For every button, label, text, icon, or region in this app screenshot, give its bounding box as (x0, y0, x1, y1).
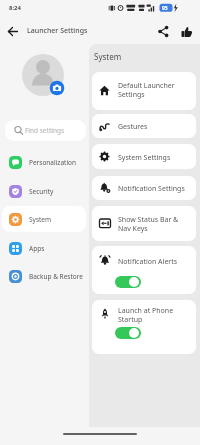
button[interactable] (156, 24, 171, 39)
staticText: Show Status Bar & Nav Keys (118, 215, 179, 233)
button[interactable]: Backup & Restore (4, 262, 86, 290)
staticText: Find settings (25, 126, 65, 135)
button[interactable]: System Settings (92, 144, 196, 169)
button[interactable]: Gestures (92, 114, 196, 138)
button[interactable]: Find settings (5, 120, 86, 141)
button[interactable]: Show Status Bar & Nav Keys (92, 206, 196, 241)
button[interactable]: Apps (4, 234, 86, 262)
staticText: Personalization (29, 158, 77, 167)
button[interactable] (4, 23, 21, 40)
button[interactable]: Personalization (4, 148, 86, 176)
staticText: System (94, 51, 122, 62)
staticText: Notification Alerts (118, 257, 178, 267)
button[interactable]: Default Launcher Settings (92, 72, 196, 110)
staticText: Default Launcher Settings (118, 81, 175, 99)
button[interactable] (179, 24, 194, 39)
staticText: Notification Settings (118, 184, 185, 194)
button[interactable] (115, 276, 141, 288)
button[interactable]: Notification Settings (92, 176, 196, 200)
button[interactable]: Launch at Phone Startup (92, 300, 196, 354)
button[interactable]: Notification Alerts (92, 246, 196, 294)
button[interactable] (115, 327, 141, 339)
staticText: 95 (162, 5, 168, 12)
button[interactable]: Security (4, 177, 86, 205)
button[interactable]: System (4, 205, 86, 233)
staticText: System (29, 215, 52, 224)
staticText: System Settings (118, 153, 171, 163)
staticText: Gestures (118, 122, 148, 132)
staticText: Launch at Phone Startup (118, 306, 174, 324)
staticText: Launcher Settings (27, 26, 88, 36)
staticText: 8:24 (9, 4, 21, 12)
staticText: Security (29, 187, 54, 196)
staticText: Backup & Restore (29, 272, 83, 281)
staticText: Apps (29, 244, 45, 253)
